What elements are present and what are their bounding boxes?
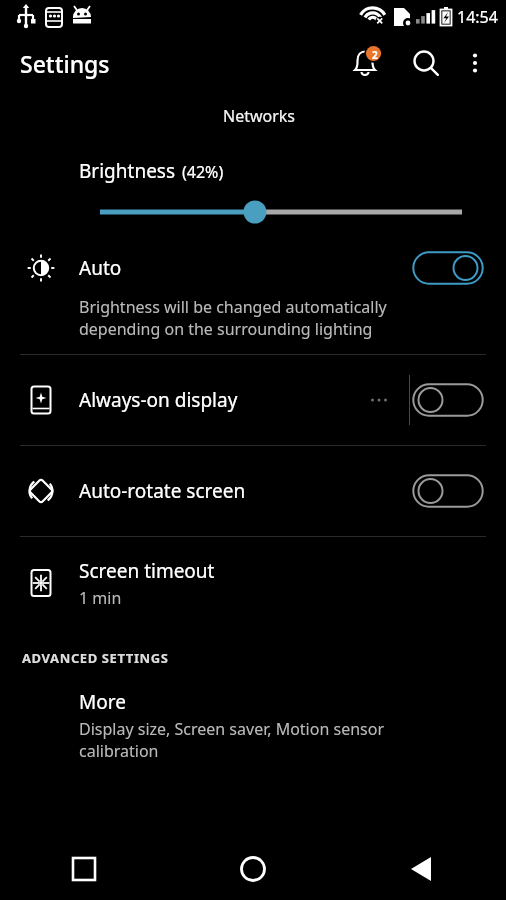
button[interactable]: Recent apps [0,838,168,900]
button[interactable]: Home [168,838,337,900]
button[interactable] [0,198,506,226]
button[interactable]: Always-on display [0,355,506,445]
staticText: depending on the surrounding lighting [79,318,373,340]
staticText: Auto [79,255,122,281]
button[interactable]: Back [337,838,506,900]
staticText: Always-on display [79,387,238,413]
button[interactable]: Toggle, off [412,383,484,417]
staticText: calibration [79,740,159,762]
button[interactable]: Search [404,41,448,85]
button[interactable]: Toggle, off [412,474,484,508]
button[interactable]: Networks [13,92,506,138]
staticText: Networks [223,105,296,127]
staticText: Screen timeout [79,558,215,584]
staticText: Brightness will be changed automatically [79,296,387,318]
button[interactable]: More [0,667,506,762]
button[interactable]: More options [454,42,496,84]
button[interactable]: Notifications, 2 new [344,40,390,86]
staticText: Settings [20,48,110,79]
button[interactable]: Toggle, on [412,251,484,285]
button[interactable]: Screen timeout [0,537,506,629]
staticText: 2 [372,48,378,62]
button[interactable]: Auto-rotate screen [0,446,506,536]
staticText: Auto-rotate screen [79,478,246,504]
staticText: 14:54 [457,6,498,28]
staticText: ADVANCED SETTINGS [22,649,169,667]
staticText: More [79,689,126,715]
staticText: Display size, Screen saver, Motion senso… [79,718,385,740]
staticText: (42%) [182,161,224,183]
staticText: 1 min [79,587,122,609]
staticText: Brightness [79,158,176,184]
button[interactable]: Auto [0,240,506,296]
